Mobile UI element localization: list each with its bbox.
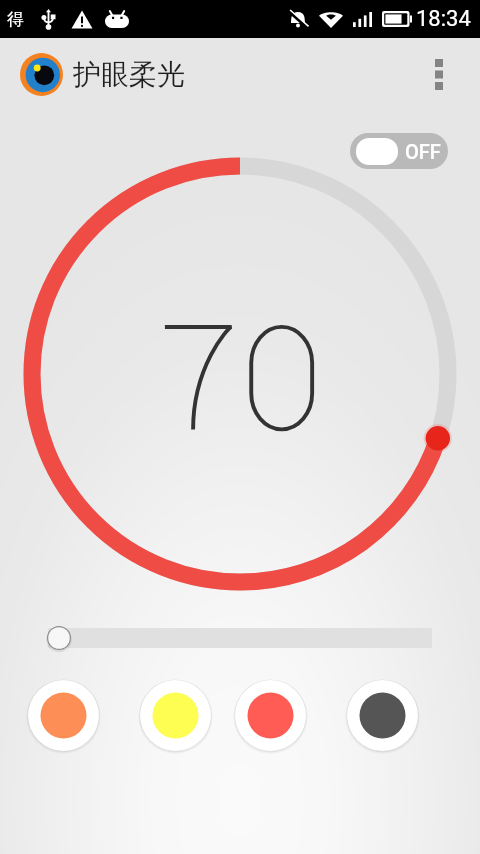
staticText: 护眼柔光 (73, 57, 185, 92)
button[interactable]: More options (427, 54, 451, 94)
button[interactable]: Colour (136, 676, 215, 755)
button[interactable]: OFF (350, 133, 448, 169)
staticText: 得 (7, 9, 24, 30)
button[interactable]: Colour (231, 676, 310, 755)
button[interactable]: Brightness (48, 628, 432, 648)
staticText: 18:34 (416, 6, 471, 32)
button[interactable]: Colour (343, 676, 422, 755)
staticText: OFF (405, 140, 441, 163)
button[interactable]: Colour (24, 676, 103, 755)
